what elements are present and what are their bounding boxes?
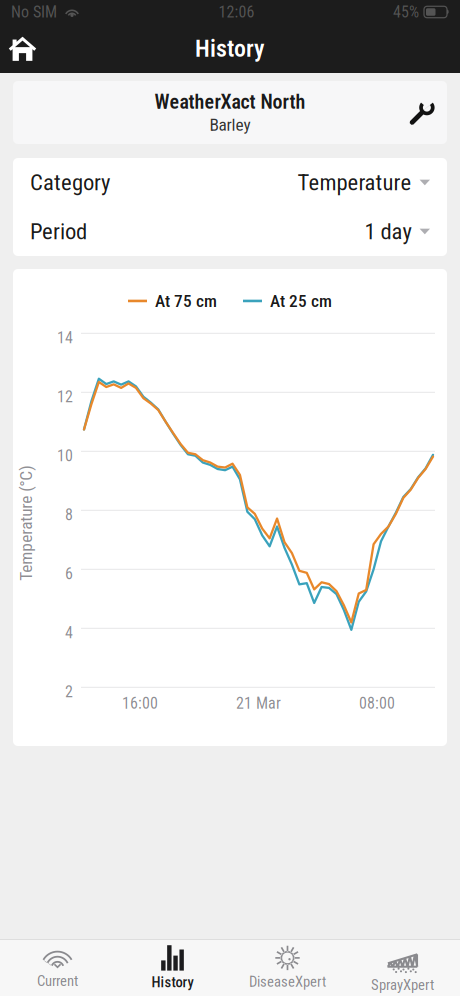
button[interactable]: DiseaseXpert (230, 940, 345, 996)
staticText: 12 (57, 387, 73, 406)
staticText: DiseaseXpert (249, 973, 326, 990)
staticText: 4 (65, 623, 73, 642)
staticText: 1 day (365, 218, 412, 245)
staticText: 2 (65, 682, 73, 701)
button[interactable]: Category (13, 158, 447, 207)
button[interactable]: Settings (408, 98, 447, 126)
button[interactable]: Home (0, 33, 43, 63)
staticText: History (151, 974, 193, 991)
staticText: Period (30, 218, 87, 245)
staticText: SprayXpert (371, 976, 434, 994)
staticText: 8 (65, 505, 73, 524)
staticText: Barley (209, 115, 250, 135)
button[interactable]: Period (13, 207, 447, 256)
staticText: Temperature (°C) (0, 513, 84, 533)
staticText: At 75 cm (155, 291, 217, 311)
staticText: WeatherXact North (154, 90, 305, 113)
staticText: Temperature (298, 169, 412, 196)
staticText: 45% (393, 3, 419, 21)
staticText: Category (30, 169, 110, 196)
staticText: History (195, 34, 265, 62)
staticText: Current (37, 972, 78, 990)
staticText: 21 Mar (236, 694, 281, 713)
button[interactable]: Current (0, 940, 115, 996)
staticText: 14 (57, 328, 73, 347)
button[interactable]: SprayXpert (345, 940, 460, 996)
staticText: 12:06 (218, 3, 254, 21)
staticText: 6 (65, 564, 73, 583)
staticText: 08:00 (359, 694, 395, 713)
staticText: 10 (57, 446, 73, 465)
staticText: No SIM (11, 3, 57, 21)
staticText: At 25 cm (270, 291, 332, 311)
staticText: 16:00 (122, 694, 158, 713)
button[interactable]: History (115, 940, 230, 996)
